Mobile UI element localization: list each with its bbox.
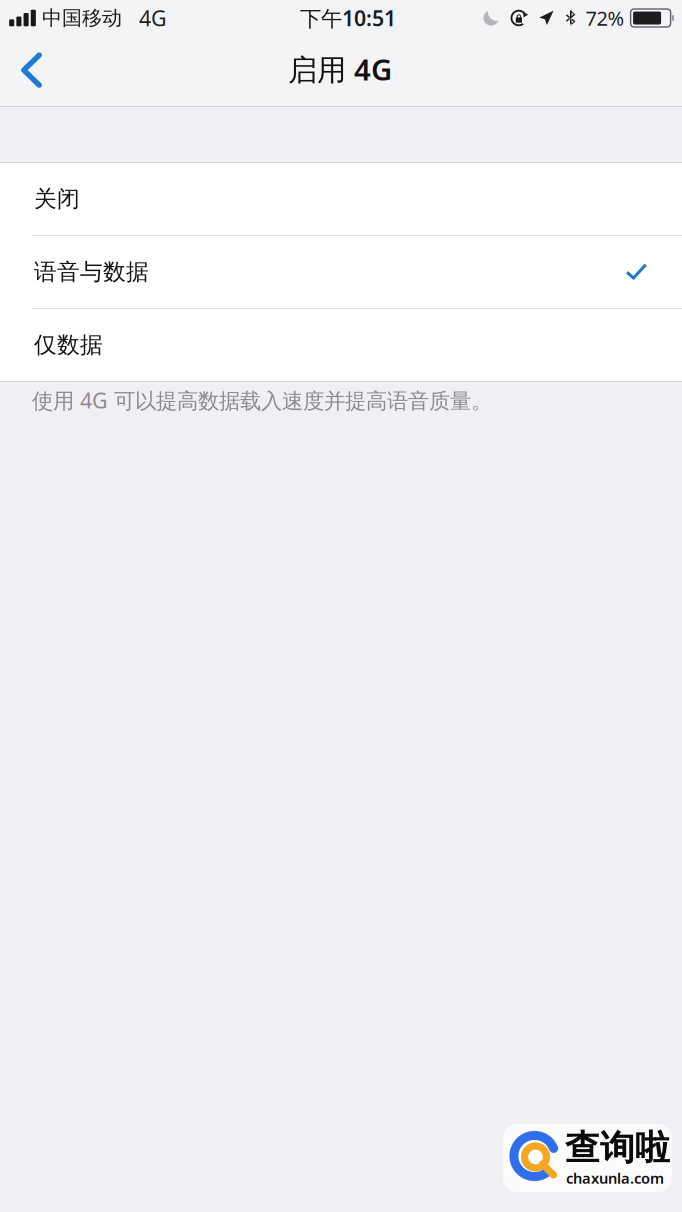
staticText: 中国移动 [42,6,122,30]
staticText: 4G [139,4,167,32]
staticText: 关闭 [34,185,80,213]
staticText: chaxunla.com [566,1168,664,1188]
staticText: 启用 4G [288,49,392,88]
staticText: 语音与数据 [34,258,149,286]
button[interactable]: 语音与数据 [0,236,682,308]
staticText: 查询啦 [565,1127,670,1169]
staticText: 仅数据 [34,331,103,359]
staticText: 下午10:51 [300,4,396,32]
button[interactable]: 关闭 [0,163,682,235]
staticText: 使用 4G 可以提高数据载入速度并提高语音质量。 [32,386,492,414]
button[interactable]: 仅数据 [0,309,682,381]
staticText: 72% [586,5,625,31]
button[interactable]: 返回 [0,41,62,100]
